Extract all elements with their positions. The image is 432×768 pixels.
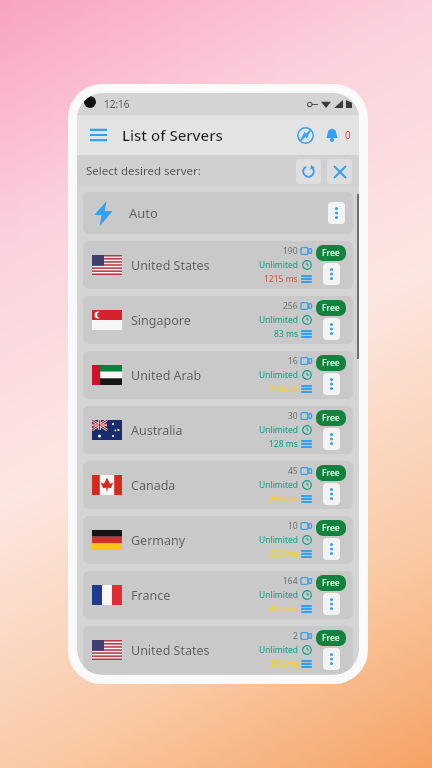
button[interactable]: Close	[327, 159, 352, 184]
staticText: Select desired server:	[86, 163, 201, 179]
button[interactable]: More options	[323, 263, 340, 285]
staticText: United States	[131, 257, 210, 274]
button[interactable]: United States	[83, 626, 353, 674]
button[interactable]: United States	[83, 241, 353, 289]
button[interactable]: More options	[328, 202, 345, 224]
staticText: List of Servers	[122, 125, 223, 145]
staticText: Free	[322, 577, 340, 589]
button[interactable]: More options	[323, 483, 340, 505]
staticText: Unlimited	[259, 314, 299, 326]
staticText: Free	[322, 467, 340, 479]
staticText: 83 ms	[274, 328, 298, 340]
staticText: Unlimited	[259, 534, 299, 546]
button[interactable]: More options	[323, 538, 340, 560]
button[interactable]: More options	[323, 318, 340, 340]
staticText: 306 ms	[269, 658, 298, 670]
button[interactable]: Notifications	[319, 122, 345, 148]
staticText: 190	[283, 245, 298, 257]
staticText: Auto	[129, 204, 158, 222]
staticText: 2	[293, 630, 298, 642]
button[interactable]: More options	[323, 593, 340, 615]
button[interactable]: Australia	[83, 406, 353, 454]
staticText: 1215 ms	[264, 273, 298, 285]
staticText: Unlimited	[259, 589, 299, 601]
button[interactable]: Menu	[82, 119, 114, 151]
staticText: Canada	[131, 477, 176, 494]
button[interactable]: VPN status	[291, 121, 319, 149]
staticText: Free	[322, 247, 340, 259]
staticText: 10	[288, 520, 298, 532]
staticText: Free	[322, 522, 340, 534]
staticText: 452 ms	[269, 603, 298, 615]
staticText: Unlimited	[259, 259, 299, 271]
staticText: 164	[283, 575, 298, 587]
staticText: 256	[283, 300, 298, 312]
staticText: 234 ms	[269, 383, 298, 395]
staticText: Unlimited	[259, 479, 299, 491]
staticText: Unlimited	[259, 644, 299, 656]
button[interactable]: More options	[323, 648, 340, 670]
staticText: Free	[322, 632, 340, 644]
staticText: 220 ms	[269, 548, 298, 560]
staticText: Singapore	[131, 312, 191, 329]
staticText: Germany	[131, 532, 186, 549]
button[interactable]: More options	[323, 428, 340, 450]
staticText: 266 ms	[269, 493, 298, 505]
staticText: 45	[288, 465, 298, 477]
staticText: 128 ms	[269, 438, 298, 450]
staticText: United Arab Emirates	[131, 367, 235, 384]
staticText: Free	[322, 302, 340, 314]
staticText: 16	[288, 355, 298, 367]
button[interactable]: United Arab Emirates	[83, 351, 353, 399]
button[interactable]: Auto	[83, 192, 353, 234]
button[interactable]: Germany	[83, 516, 353, 564]
button[interactable]: Canada	[83, 461, 353, 509]
staticText: United States	[131, 642, 210, 659]
button[interactable]: France	[83, 571, 353, 619]
button[interactable]: More options	[323, 373, 340, 395]
staticText: France	[131, 587, 171, 604]
staticText: Free	[322, 357, 340, 369]
staticText: Free	[322, 412, 340, 424]
staticText: Unlimited	[259, 424, 299, 436]
staticText: Australia	[131, 422, 183, 439]
staticText: 0	[345, 128, 351, 142]
staticText: 30	[288, 410, 298, 422]
button[interactable]: Singapore	[83, 296, 353, 344]
staticText: Unlimited	[259, 369, 299, 381]
staticText: 12:16	[104, 97, 130, 111]
button[interactable]: Refresh	[296, 159, 321, 184]
